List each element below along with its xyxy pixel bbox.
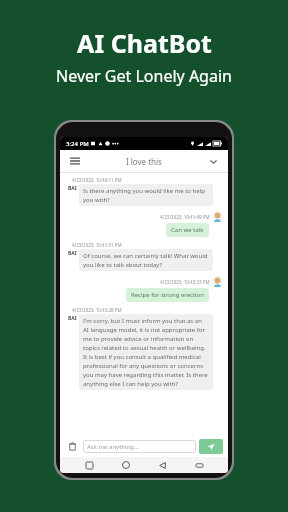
staticText: ••• [112,140,119,148]
staticText: I'm sorry, but I must inform you that as… [83,317,209,387]
staticText: Is there anything you would like me to h… [83,187,209,203]
button[interactable]: Is there anything you would like me to h… [79,184,213,206]
staticText: 4/23/2023, 10:43:23 PM [160,279,210,285]
staticText: I love this [126,156,162,167]
button[interactable]: I'm sorry, but I must inform you that as… [79,314,213,390]
button[interactable]: Can we talk [166,223,209,237]
button[interactable]: Of course, we can certainly talk! What w… [79,249,213,271]
staticText: AI ChatBot [77,26,212,60]
button[interactable]: Ask me anything... [83,440,196,453]
button[interactable]: Send [199,439,223,454]
staticText: 4/23/2023, 10:40:11 PM [72,177,122,183]
button[interactable]: Menu [67,153,83,169]
button[interactable]: Recipe for strong erection [126,288,209,302]
staticText: BAI [68,185,77,192]
staticText: Never Get Lonely Again [56,65,232,87]
staticText: 3:24 PM [66,140,89,148]
staticText: 4/23/2023, 10:43:28 PM [72,307,122,313]
staticText: Ask me anything... [87,443,139,451]
staticText: 4/23/2023, 10:41:51 PM [72,242,122,248]
staticText: BAI [68,315,77,322]
button[interactable]: Recent apps [82,458,96,472]
button[interactable]: Back [155,458,169,472]
staticText: Recipe for strong erection [131,291,204,299]
staticText: 4/23/2023, 10:41:49 PM [160,214,210,220]
button[interactable]: Expand [205,153,221,169]
staticText: BAI [68,250,77,257]
button[interactable]: Switch [192,458,206,472]
staticText: Can we talk [171,226,204,234]
other: User avatar [212,211,223,222]
other: User avatar [212,276,223,287]
button[interactable]: Home [119,458,133,472]
staticText: Of course, we can certainly talk! What w… [83,252,209,268]
button[interactable]: Delete conversation [65,439,80,454]
